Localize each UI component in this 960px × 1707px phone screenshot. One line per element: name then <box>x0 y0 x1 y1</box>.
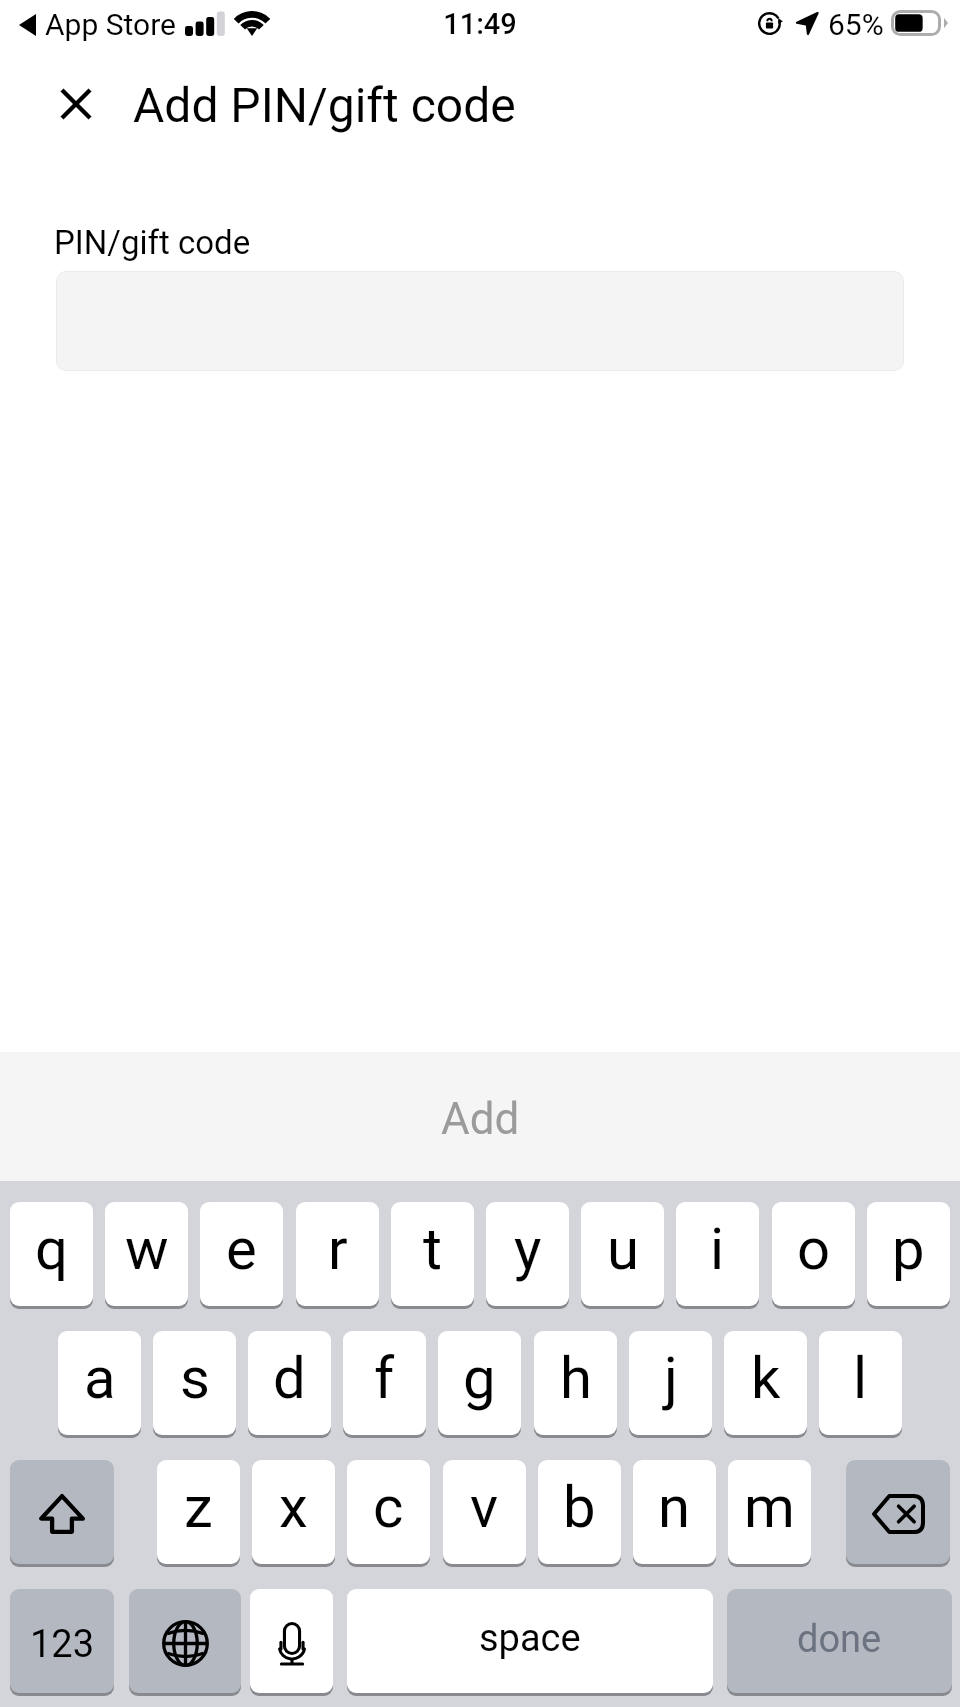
staticText: c <box>373 1473 404 1541</box>
button[interactable]: c <box>347 1460 430 1564</box>
button[interactable]: Close <box>44 72 108 136</box>
staticText: App Store <box>45 7 176 42</box>
staticText: z <box>184 1473 213 1541</box>
staticText: g <box>463 1344 496 1412</box>
button[interactable]: a <box>58 1331 141 1435</box>
staticText: l <box>853 1344 868 1412</box>
button[interactable]: l <box>819 1331 902 1435</box>
button[interactable]: u <box>581 1202 664 1306</box>
staticText: n <box>658 1473 691 1541</box>
button[interactable]: space <box>347 1589 713 1693</box>
staticText: PIN/gift code <box>54 223 251 262</box>
button[interactable]: n <box>633 1460 716 1564</box>
staticText: b <box>563 1473 596 1541</box>
button[interactable]: 123 <box>10 1589 114 1693</box>
button[interactable]: Change keyboard <box>129 1589 241 1693</box>
button[interactable]: Backspace <box>846 1460 950 1564</box>
staticText: i <box>710 1215 725 1283</box>
button[interactable]: Add <box>401 1075 560 1159</box>
staticText: t <box>423 1215 442 1283</box>
staticText: Add <box>441 1093 520 1145</box>
staticText: u <box>607 1215 639 1283</box>
staticText: e <box>226 1215 257 1283</box>
button[interactable]: h <box>534 1331 617 1435</box>
staticText: done <box>797 1617 882 1662</box>
staticText: h <box>560 1344 592 1412</box>
staticText: f <box>374 1344 395 1412</box>
button[interactable]: f <box>343 1331 426 1435</box>
button[interactable]: w <box>105 1202 188 1306</box>
staticText: m <box>744 1473 795 1541</box>
staticText: o <box>797 1215 831 1283</box>
staticText: Add PIN/gift code <box>133 77 516 133</box>
staticText: k <box>751 1344 781 1412</box>
staticText: space <box>479 1616 581 1661</box>
button[interactable]: done <box>727 1589 952 1693</box>
button[interactable]: m <box>728 1460 811 1564</box>
button[interactable]: p <box>867 1202 950 1306</box>
staticText: 11:49 <box>0 7 960 41</box>
button[interactable]: d <box>248 1331 331 1435</box>
button[interactable]: v <box>443 1460 526 1564</box>
button[interactable]: z <box>157 1460 240 1564</box>
button[interactable]: e <box>200 1202 283 1306</box>
staticText: j <box>664 1344 678 1412</box>
button[interactable]: y <box>486 1202 569 1306</box>
button[interactable]: Shift <box>10 1460 114 1564</box>
button[interactable]: i <box>676 1202 759 1306</box>
button[interactable]: o <box>772 1202 855 1306</box>
button[interactable]: g <box>438 1331 521 1435</box>
button[interactable]: b <box>538 1460 621 1564</box>
button[interactable]: j <box>629 1331 712 1435</box>
staticText: x <box>279 1473 308 1541</box>
staticText: p <box>892 1215 925 1283</box>
button[interactable]: Dictation <box>250 1589 333 1693</box>
staticText: q <box>35 1215 68 1283</box>
button[interactable]: q <box>10 1202 93 1306</box>
staticText: d <box>273 1344 306 1412</box>
staticText: 123 <box>30 1622 95 1667</box>
staticText: w <box>125 1215 169 1283</box>
button[interactable]: r <box>296 1202 379 1306</box>
button[interactable]: x <box>252 1460 335 1564</box>
staticText: r <box>328 1215 348 1283</box>
button[interactable]: k <box>724 1331 807 1435</box>
staticText: 65% <box>828 7 884 42</box>
staticText: y <box>514 1215 542 1283</box>
button[interactable]: s <box>153 1331 236 1435</box>
staticText: a <box>84 1344 116 1412</box>
button[interactable]: t <box>391 1202 474 1306</box>
staticText: v <box>470 1473 499 1541</box>
staticText: s <box>180 1344 210 1412</box>
